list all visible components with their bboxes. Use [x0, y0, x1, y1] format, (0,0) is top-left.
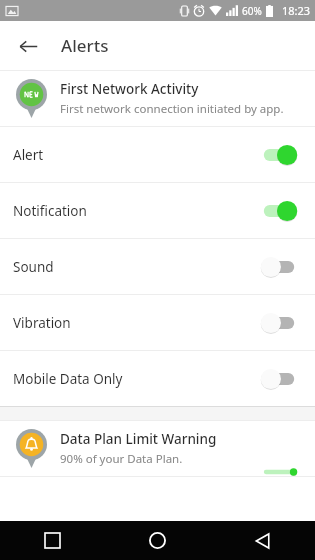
- button[interactable]: First Network Activity: [0, 71, 315, 126]
- staticText: Mobile Data Only: [13, 370, 123, 388]
- button[interactable]: Home: [105, 521, 210, 560]
- button[interactable]: Sound: [0, 239, 315, 294]
- staticText: Alerts: [61, 34, 109, 57]
- staticText: 60%: [242, 4, 262, 18]
- button[interactable]: Back: [9, 27, 47, 65]
- staticText: First network connection initiated by ap…: [60, 101, 284, 117]
- staticText: First Network Activity: [60, 80, 199, 98]
- staticText: 90% of your Data Plan.: [60, 451, 183, 467]
- button[interactable]: Alert: [0, 127, 315, 182]
- staticText: 18:23: [282, 3, 311, 18]
- button[interactable]: Recent apps: [0, 521, 105, 560]
- button[interactable]: Vibration: [0, 295, 315, 350]
- staticText: Notification: [13, 202, 87, 220]
- button[interactable]: Mobile Data Only: [0, 351, 315, 406]
- button[interactable]: Data Plan Limit Warning: [0, 421, 315, 476]
- button[interactable]: Back: [210, 521, 315, 560]
- staticText: Alert: [13, 146, 44, 164]
- staticText: Sound: [13, 258, 54, 276]
- button[interactable]: Notification: [0, 183, 315, 238]
- staticText: Data Plan Limit Warning: [60, 430, 217, 448]
- staticText: Vibration: [13, 314, 71, 332]
